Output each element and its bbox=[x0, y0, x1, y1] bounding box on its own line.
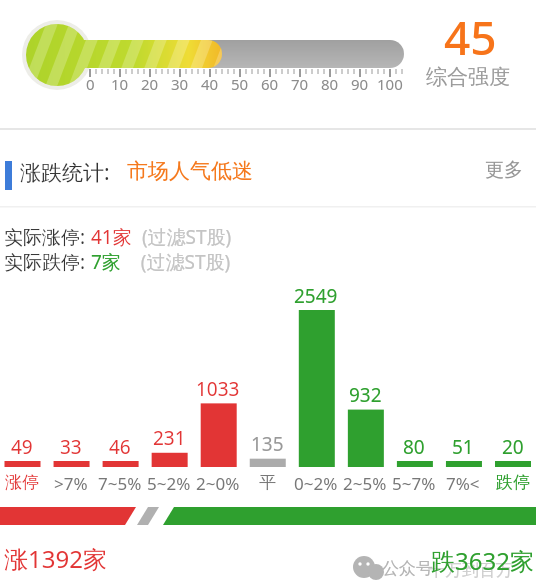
staticText: 20 bbox=[141, 74, 159, 94]
staticText: 33 bbox=[60, 434, 82, 460]
staticText: 0 bbox=[86, 74, 95, 94]
staticText: 70 bbox=[291, 74, 309, 94]
staticText: 更多 bbox=[485, 158, 523, 182]
staticText: 45 bbox=[444, 6, 497, 69]
staticText: 135 bbox=[251, 431, 284, 457]
staticText: 2549 bbox=[294, 283, 338, 309]
staticText: 49 bbox=[11, 434, 33, 460]
staticText: 跌3632家 bbox=[431, 544, 534, 577]
staticText: 231 bbox=[153, 425, 186, 451]
staticText: 80 bbox=[403, 434, 425, 460]
button[interactable]: 更多 bbox=[476, 158, 532, 188]
staticText: 涨停 bbox=[5, 472, 39, 493]
staticText: 涨跌统计: bbox=[20, 158, 116, 187]
staticText: 51 bbox=[452, 434, 474, 460]
staticText: 涨1392家 bbox=[4, 542, 107, 575]
staticText: 7%< bbox=[446, 472, 480, 495]
staticText: 40 bbox=[201, 74, 219, 94]
staticText: 十万到百万 bbox=[428, 560, 513, 581]
staticText: 20 bbox=[502, 434, 524, 460]
staticText: 60 bbox=[261, 74, 279, 94]
staticText: 0~2% bbox=[294, 472, 338, 495]
staticText: 7家 bbox=[91, 249, 121, 275]
staticText: 5~2% bbox=[147, 472, 191, 495]
staticText: (过滤ST股) bbox=[132, 224, 232, 250]
staticText: 2~5% bbox=[343, 472, 387, 495]
staticText: 跌停 bbox=[496, 472, 530, 493]
staticText: 平 bbox=[259, 472, 276, 493]
staticText: 46 bbox=[109, 434, 131, 460]
staticText: 1033 bbox=[196, 376, 240, 402]
staticText: 80 bbox=[321, 74, 339, 94]
staticText: 41家 bbox=[91, 224, 132, 250]
staticText: 932 bbox=[349, 382, 382, 408]
staticText: 实际跌停: bbox=[4, 249, 91, 275]
staticText: 30 bbox=[171, 74, 189, 94]
staticText: 市场人气低迷 bbox=[127, 158, 253, 184]
staticText: 综合强度 bbox=[426, 64, 510, 90]
staticText: >7% bbox=[54, 472, 88, 495]
staticText: 实际涨停: bbox=[4, 224, 91, 250]
staticText: 90 bbox=[351, 74, 369, 94]
staticText: 10 bbox=[111, 74, 129, 94]
staticText: 50 bbox=[231, 74, 249, 94]
staticText: 公众号 bbox=[382, 558, 433, 579]
staticText: (过滤ST股) bbox=[121, 249, 231, 275]
staticText: 100 bbox=[377, 74, 403, 94]
staticText: 2~0% bbox=[196, 472, 240, 495]
staticText: 5~7% bbox=[392, 472, 436, 495]
staticText: 7~5% bbox=[98, 472, 142, 495]
button[interactable]: 涨跌统计: bbox=[20, 158, 253, 187]
